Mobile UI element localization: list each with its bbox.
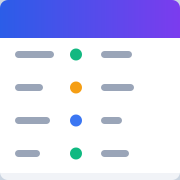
button[interactable] bbox=[0, 137, 180, 170]
button[interactable] bbox=[0, 71, 180, 104]
button[interactable] bbox=[0, 38, 180, 71]
button[interactable] bbox=[0, 104, 180, 137]
